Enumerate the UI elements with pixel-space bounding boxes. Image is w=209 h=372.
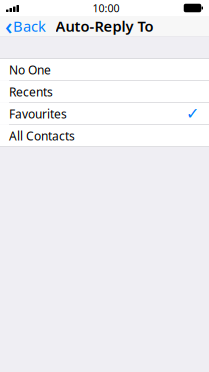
staticText: No One [9,62,51,78]
staticText: Recents [9,84,53,100]
staticText: Back [13,16,46,36]
button[interactable]: All Contacts [0,125,209,146]
staticText: Auto-Reply To [55,16,153,36]
staticText: ✓ [186,105,199,123]
staticText: Favourites [9,106,67,122]
staticText: 10:00 [92,1,119,15]
button[interactable]: Recents [0,81,209,102]
staticText: ‹ [5,11,12,41]
button[interactable]: No One [0,59,209,80]
button[interactable]: ‹ [0,12,46,40]
button[interactable]: Favourites [0,103,209,124]
staticText: All Contacts [9,128,75,144]
